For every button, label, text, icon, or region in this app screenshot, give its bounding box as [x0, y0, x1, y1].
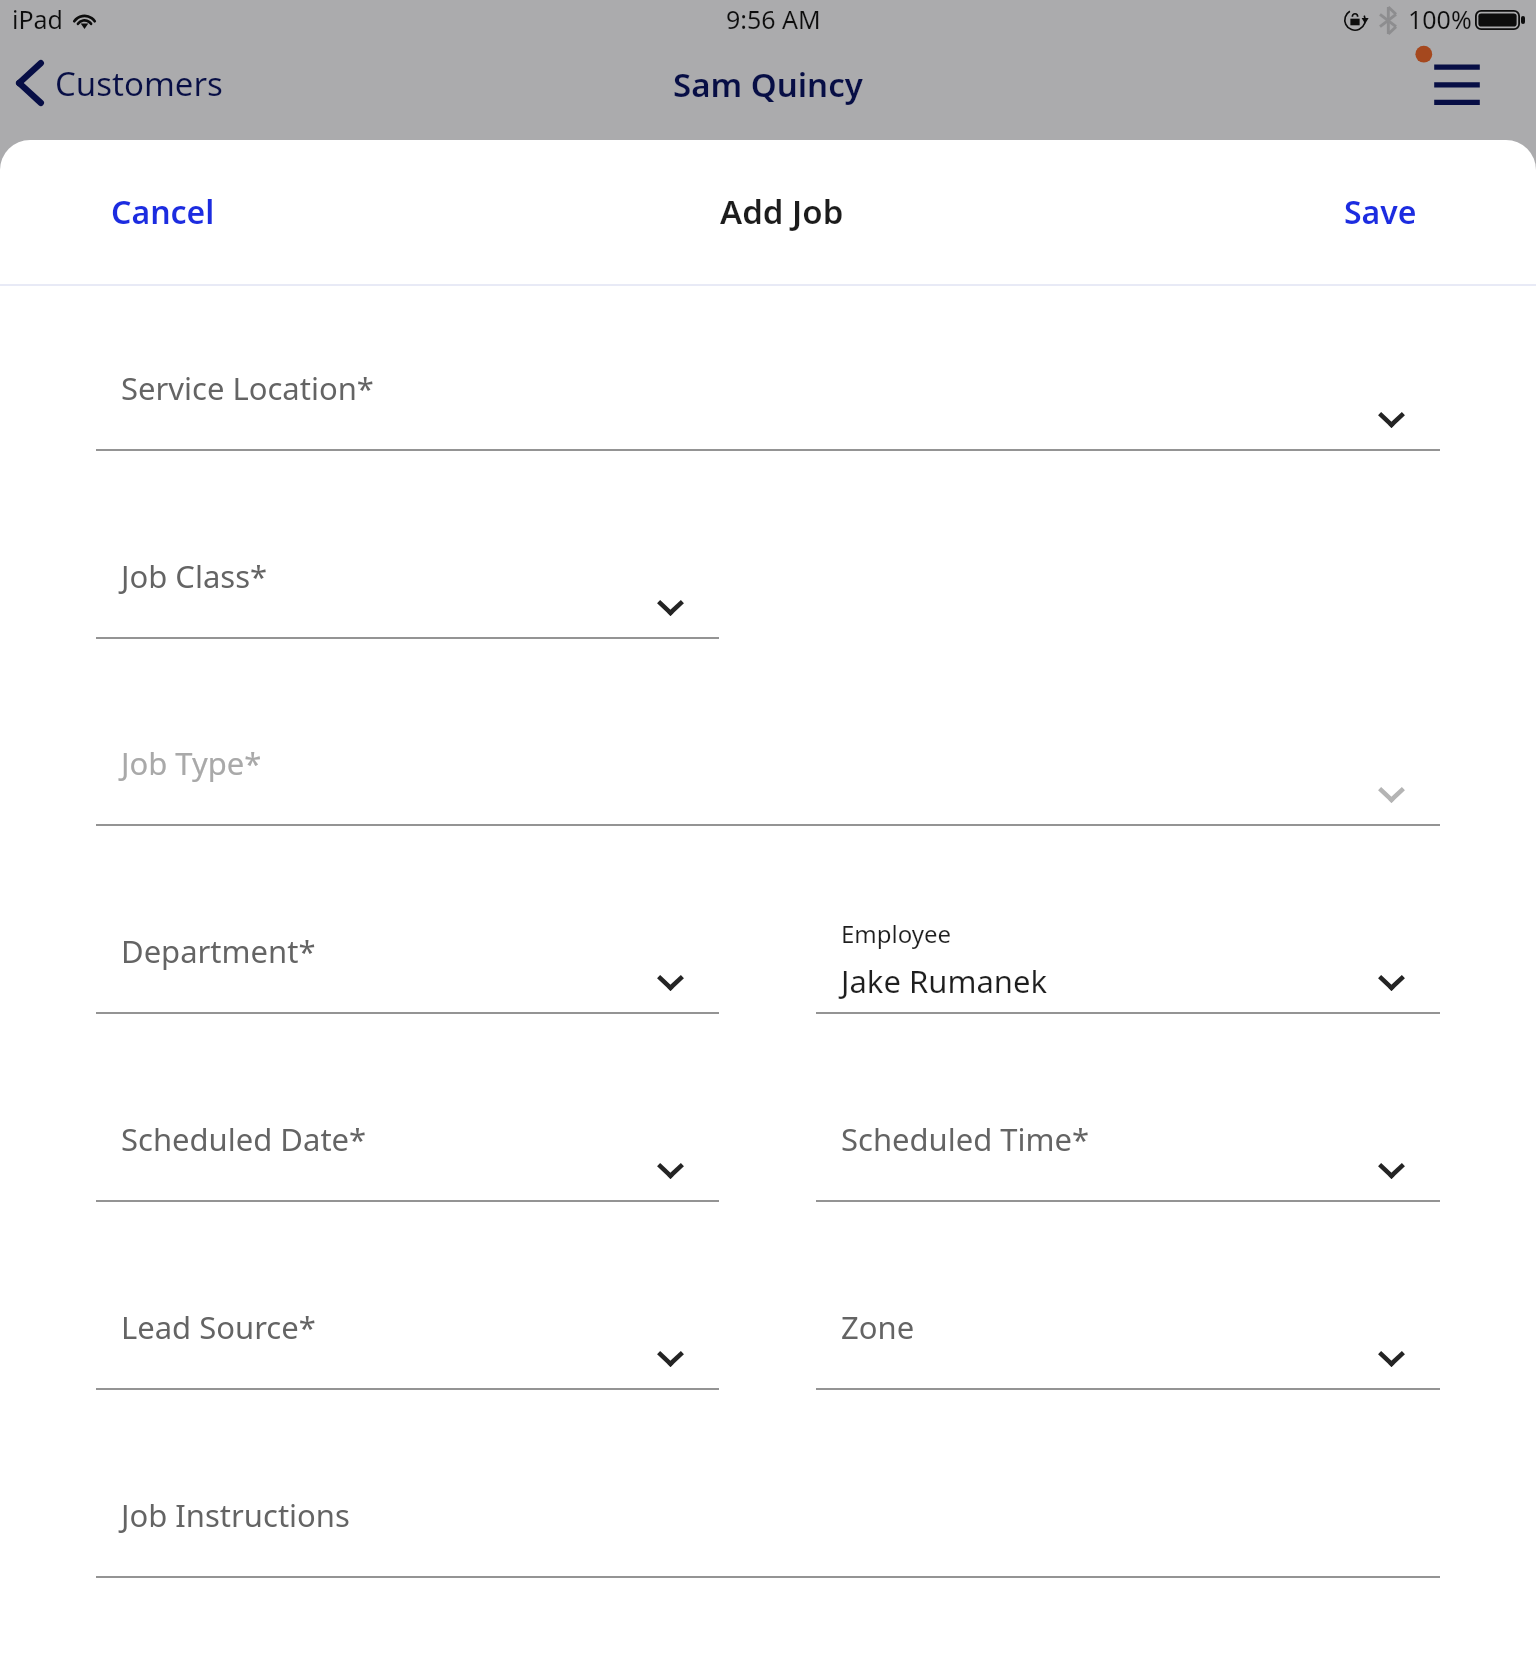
staticText: Department* — [121, 930, 316, 972]
staticText: 100% — [1408, 2, 1472, 36]
staticText: Employee — [841, 917, 952, 950]
button[interactable]: Customers — [6, 54, 239, 112]
staticText: Scheduled Date* — [121, 1118, 367, 1160]
button[interactable]: Save — [1312, 178, 1449, 246]
staticText: 9:56 AM — [726, 2, 821, 36]
staticText: Cancel — [111, 190, 215, 234]
staticText: Job Type* — [121, 742, 262, 784]
button[interactable]: Scheduled Date* — [96, 1096, 719, 1202]
staticText: Job Instructions — [121, 1494, 350, 1536]
button[interactable]: Job Instructions — [96, 1472, 1440, 1578]
button[interactable]: Job Type* — [96, 720, 1440, 826]
staticText: Lead Source* — [121, 1306, 316, 1348]
staticText: Save — [1344, 190, 1417, 234]
staticText: Jake Rumanek — [841, 960, 1047, 1002]
staticText: Job Class* — [121, 555, 268, 597]
staticText: iPad — [12, 2, 63, 36]
staticText: Service Location* — [121, 367, 374, 409]
button[interactable]: Cancel — [79, 178, 247, 246]
button[interactable]: Job Class* — [96, 533, 719, 639]
staticText: Customers — [55, 61, 223, 106]
button[interactable]: Employee — [816, 908, 1440, 1014]
button[interactable]: Zone — [816, 1284, 1440, 1390]
staticText: Zone — [841, 1306, 915, 1348]
staticText: Add Job — [720, 189, 844, 234]
button[interactable]: Scheduled Time* — [816, 1096, 1440, 1202]
button[interactable]: Service Location* — [96, 345, 1440, 451]
staticText: Scheduled Time* — [841, 1118, 1090, 1160]
button[interactable]: Department* — [96, 908, 719, 1014]
staticText: Sam Quincy — [673, 62, 863, 107]
button[interactable]: Menu — [1404, 34, 1510, 136]
button[interactable]: Lead Source* — [96, 1284, 719, 1390]
